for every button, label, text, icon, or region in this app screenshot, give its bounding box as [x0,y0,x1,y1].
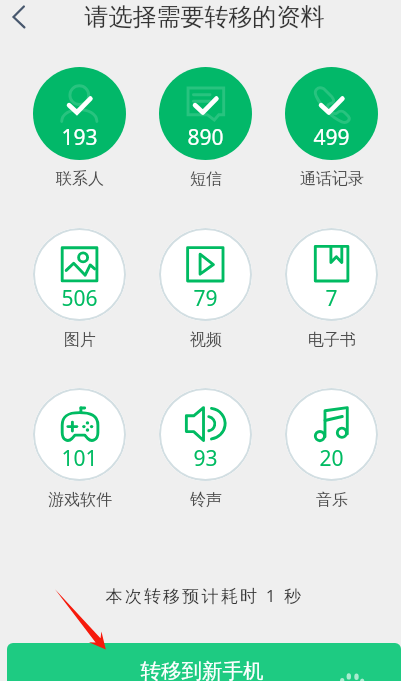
staticText: 铃声 [190,490,222,510]
button[interactable]: 890 [159,67,252,189]
staticText: 101 [33,444,126,473]
button[interactable]: 20 [285,388,378,510]
staticText: 图片 [64,330,96,350]
staticText: 转移到新手机 [7,658,399,681]
button[interactable]: 7 [285,228,378,350]
staticText: 电子书 [308,330,356,350]
staticText: 请选择需要转移的资料 [4,2,401,32]
button[interactable]: 93 [159,388,252,510]
button[interactable]: 101 [33,388,126,510]
staticText: 20 [285,444,378,473]
staticText: 79 [159,284,252,313]
button[interactable]: 转移到新手机 [7,643,401,681]
staticText: 7 [285,284,378,313]
staticText: 短信 [190,169,222,189]
staticText: 音乐 [316,490,348,510]
staticText: 506 [33,284,126,313]
staticText: 890 [159,123,252,152]
staticText: 游戏软件 [48,490,112,510]
staticText: 193 [33,123,126,152]
button[interactable]: 79 [159,228,252,350]
button[interactable]: 506 [33,228,126,350]
staticText: 93 [159,444,252,473]
staticText: 通话记录 [300,169,364,189]
staticText: 本次转移预计耗时 1 秒 [4,584,401,607]
button[interactable]: 193 [33,67,126,189]
staticText: 联系人 [56,169,104,189]
staticText: 499 [285,123,378,152]
button[interactable]: Back [0,0,44,44]
button[interactable]: 499 [285,67,378,189]
staticText: 视频 [190,330,222,350]
